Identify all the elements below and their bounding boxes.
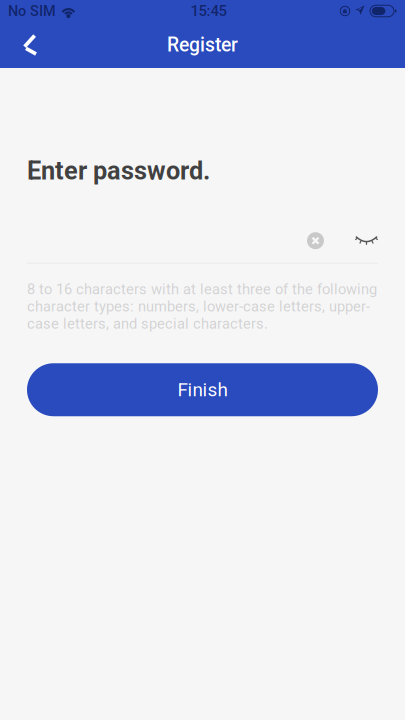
staticText: 15:45 bbox=[190, 2, 226, 20]
staticText: No SIM bbox=[8, 3, 56, 19]
button[interactable]: Show password bbox=[355, 235, 378, 246]
staticText: 8 to 16 characters with at least three o… bbox=[27, 281, 377, 332]
button[interactable]: Back bbox=[8, 22, 54, 68]
staticText: Register bbox=[167, 34, 238, 56]
button[interactable]: Finish bbox=[27, 363, 378, 416]
staticText: Finish bbox=[177, 379, 227, 401]
button[interactable]: Clear text bbox=[307, 232, 324, 249]
staticText: Enter password. bbox=[27, 156, 210, 186]
